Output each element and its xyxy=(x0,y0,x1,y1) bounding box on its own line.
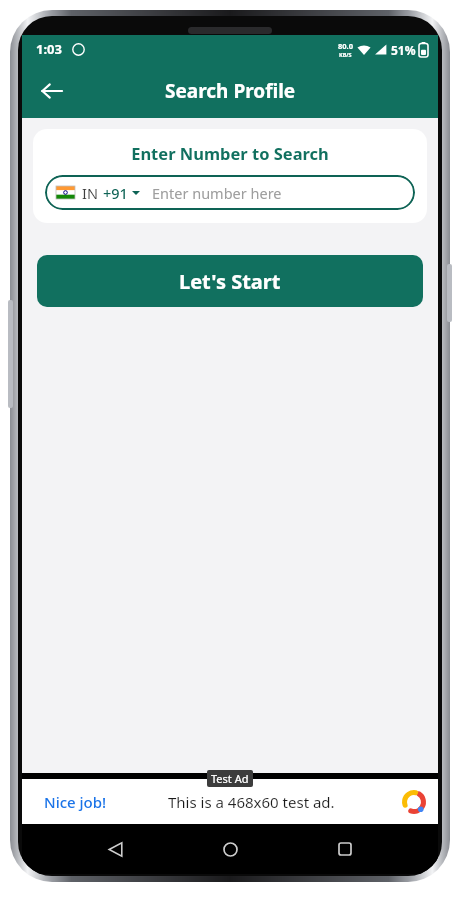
button[interactable]: Home xyxy=(208,827,252,871)
button[interactable]: IN xyxy=(45,175,415,210)
button[interactable]: Back xyxy=(30,69,74,113)
staticText: Nice job! xyxy=(44,792,107,812)
staticText: Search Profile xyxy=(165,78,296,104)
staticText: 1:03 xyxy=(36,40,62,58)
staticText: +91 xyxy=(103,183,128,203)
button[interactable]: Recent apps xyxy=(323,827,367,871)
staticText: Enter number here xyxy=(152,183,282,203)
staticText: This is a 468x60 test ad. xyxy=(168,792,335,812)
button[interactable]: Back xyxy=(93,827,137,871)
staticText: KB/S xyxy=(339,51,352,58)
staticText: Test Ad xyxy=(211,771,249,786)
staticText: IN xyxy=(82,183,98,203)
staticText: 51% xyxy=(391,42,416,58)
button[interactable]: Nice job! xyxy=(22,779,438,824)
staticText: Let's Start xyxy=(179,268,281,295)
staticText: 80.0 xyxy=(338,41,353,51)
button[interactable]: Let's Start xyxy=(37,255,423,307)
staticText: Enter Number to Search xyxy=(45,142,415,164)
